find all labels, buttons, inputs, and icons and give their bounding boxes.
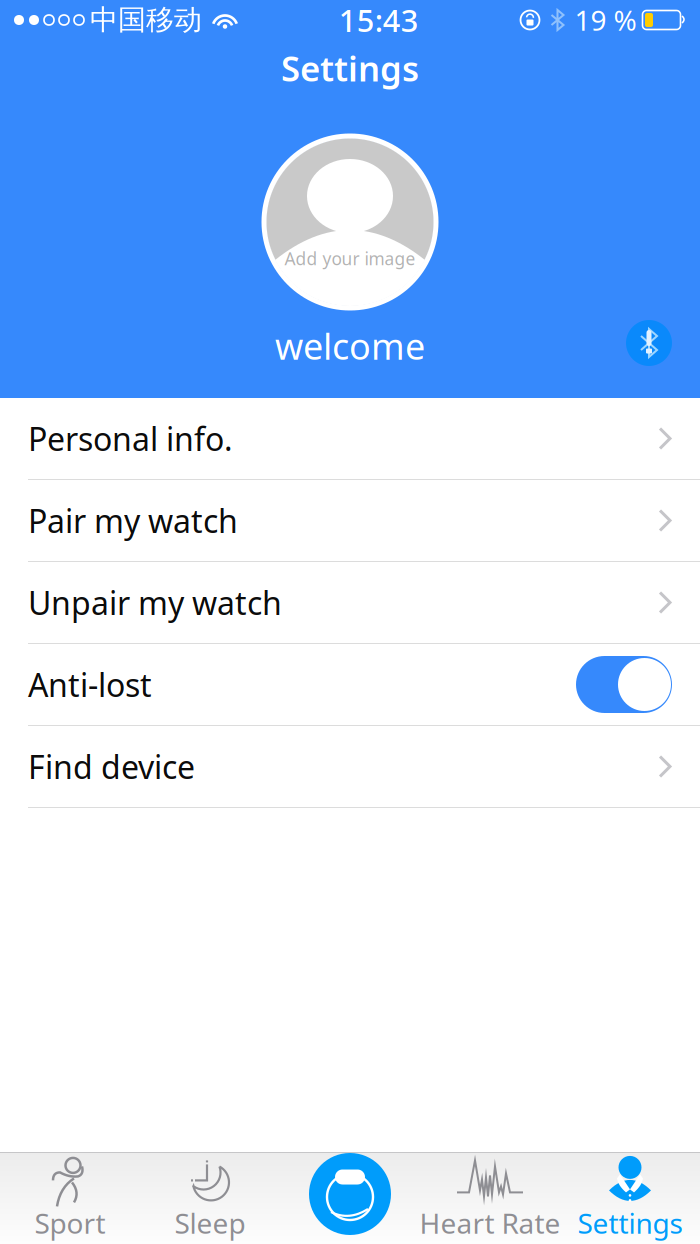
staticText: Sleep bbox=[174, 1204, 245, 1242]
staticText: welcome bbox=[275, 322, 425, 370]
button[interactable]: Heart Rate bbox=[420, 1152, 560, 1244]
button[interactable]: Find device bbox=[0, 726, 700, 808]
staticText: Add your image bbox=[284, 247, 415, 270]
staticText: Settings bbox=[577, 1204, 682, 1242]
staticText: Anti-lost bbox=[28, 663, 152, 706]
button[interactable]: Sleep bbox=[140, 1152, 280, 1244]
staticText: Settings bbox=[281, 45, 419, 91]
button[interactable]: Personal info. bbox=[0, 398, 700, 480]
button[interactable]: Anti-lost bbox=[0, 644, 700, 726]
staticText: Unpair my watch bbox=[28, 581, 282, 624]
staticText: Find device bbox=[28, 745, 195, 788]
button[interactable]: Device bbox=[309, 1153, 391, 1235]
button[interactable]: Unpair my watch bbox=[0, 562, 700, 644]
button[interactable]: Bluetooth status bbox=[626, 320, 672, 366]
staticText: Personal info. bbox=[28, 417, 233, 460]
staticText: 15:43 bbox=[339, 0, 419, 40]
staticText: 19 % bbox=[574, 1, 636, 39]
button[interactable]: Settings bbox=[560, 1152, 700, 1244]
button[interactable]: Pair my watch bbox=[0, 480, 700, 562]
staticText: Heart Rate bbox=[419, 1204, 560, 1242]
staticText: Pair my watch bbox=[28, 499, 238, 542]
staticText: 中国移动 bbox=[90, 3, 202, 37]
staticText: Sport bbox=[34, 1204, 105, 1242]
button[interactable]: Sport bbox=[0, 1152, 140, 1244]
